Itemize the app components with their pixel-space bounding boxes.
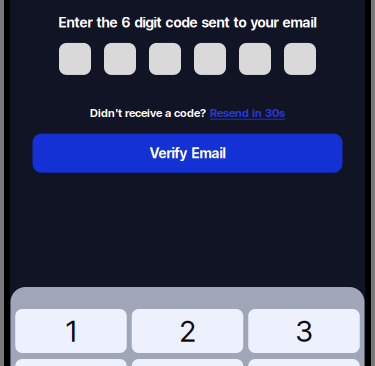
staticText: Didn't receive a code? bbox=[90, 106, 206, 120]
button[interactable]: Verify Email bbox=[32, 134, 342, 173]
button[interactable]: 5 bbox=[132, 359, 243, 366]
staticText: 3 bbox=[295, 313, 312, 349]
button[interactable]: Resend in 30s bbox=[210, 106, 285, 120]
button[interactable]: 4 bbox=[15, 359, 127, 366]
button[interactable]: 3 bbox=[248, 309, 360, 353]
button[interactable]: 2 bbox=[132, 309, 243, 353]
staticText: Resend in 30s bbox=[210, 106, 285, 120]
button[interactable]: 6 bbox=[248, 359, 360, 366]
staticText: 2 bbox=[179, 313, 195, 349]
button[interactable]: 1 bbox=[15, 309, 127, 353]
staticText: Enter the 6 digit code sent to your emai… bbox=[58, 14, 316, 31]
staticText: 1 bbox=[66, 313, 76, 349]
staticText: Verify Email bbox=[149, 145, 225, 162]
